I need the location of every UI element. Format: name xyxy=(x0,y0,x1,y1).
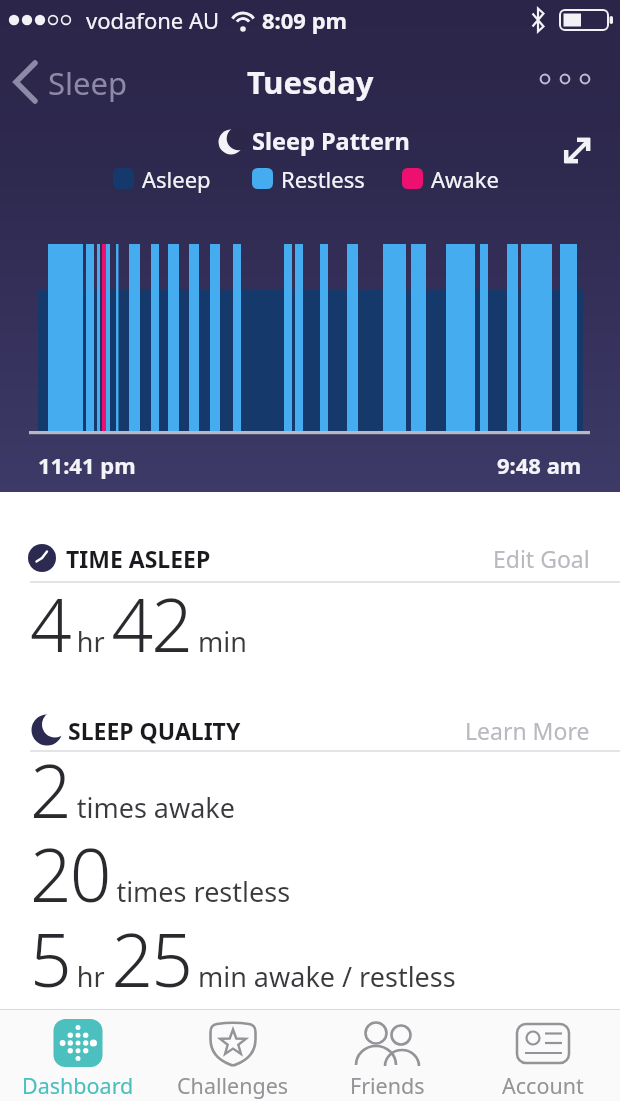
button[interactable]: Dashboard xyxy=(0,1010,155,1101)
button[interactable] xyxy=(14,60,144,104)
staticText: 20 times restless xyxy=(30,824,291,923)
button[interactable] xyxy=(556,130,600,174)
staticText: 8:09 pm xyxy=(262,5,348,35)
staticText: Account xyxy=(502,1071,584,1100)
staticText: 4 hr 42 min xyxy=(30,574,247,673)
button[interactable]: Challenges xyxy=(155,1010,310,1101)
button[interactable]: Friends xyxy=(310,1010,465,1101)
staticText: Edit Goal xyxy=(493,543,590,574)
staticText: Sleep Pattern xyxy=(252,125,410,157)
staticText: Friends xyxy=(350,1071,425,1100)
button[interactable]: Learn More xyxy=(465,715,590,746)
staticText: Tuesday xyxy=(247,61,374,103)
staticText: Restless xyxy=(281,164,365,194)
staticText: 5 hr 25 min awake / restless xyxy=(30,909,456,1008)
staticText: Sleep xyxy=(48,62,128,102)
staticText: 11:41 pm xyxy=(38,450,136,480)
staticText: 9:48 am xyxy=(497,450,582,480)
staticText: TIME ASLEEP xyxy=(66,543,211,574)
staticText: Asleep xyxy=(142,164,211,194)
staticText: SLEEP QUALITY xyxy=(68,715,241,746)
staticText: Challenges xyxy=(177,1071,289,1100)
staticText: 2 times awake xyxy=(30,740,236,839)
button[interactable] xyxy=(525,60,605,100)
staticText: Awake xyxy=(431,164,499,194)
button[interactable]: Edit Goal xyxy=(493,543,590,574)
staticText: vodafone AU xyxy=(86,5,220,35)
staticText: Learn More xyxy=(465,715,590,746)
button[interactable]: Account xyxy=(465,1010,620,1101)
staticText: Dashboard xyxy=(22,1071,134,1100)
